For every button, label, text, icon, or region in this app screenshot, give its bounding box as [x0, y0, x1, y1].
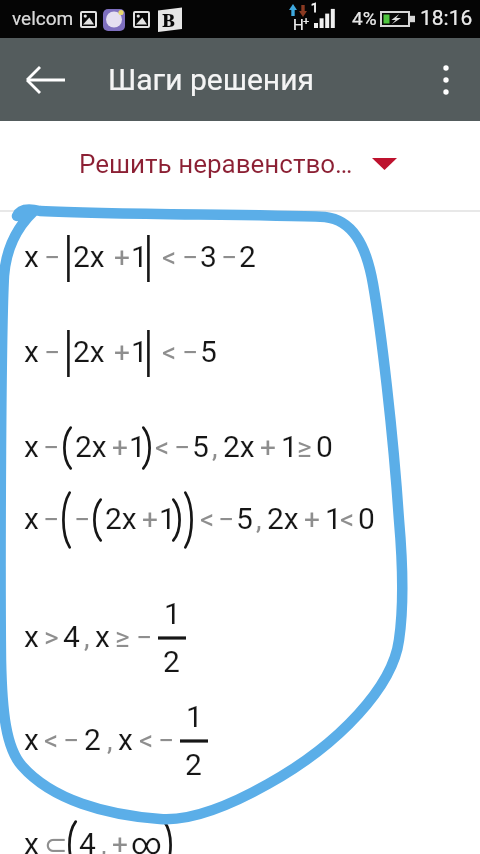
- button[interactable]: Решить неравенство…: [70, 140, 410, 192]
- staticText: x: [118, 722, 133, 757]
- staticText: +: [112, 828, 128, 854]
- staticText: Шаги решения: [108, 62, 314, 97]
- staticText: 1: [129, 429, 146, 464]
- staticText: ⊂: [44, 828, 68, 854]
- staticText: <: [44, 724, 59, 757]
- staticText: velcom: [12, 7, 74, 29]
- staticText: x: [95, 619, 110, 654]
- staticText: 2x: [73, 239, 105, 274]
- staticText: ∞: [131, 826, 162, 854]
- staticText: −: [43, 503, 60, 536]
- staticText: 5: [192, 429, 209, 464]
- staticText: ,: [101, 828, 107, 854]
- staticText: 2x: [267, 501, 299, 536]
- staticText: 2x: [105, 501, 137, 536]
- staticText: ≥: [297, 431, 312, 464]
- staticText: x: [24, 826, 39, 854]
- staticText: 1: [186, 699, 203, 734]
- staticText: 2: [163, 644, 180, 679]
- staticText: ,: [107, 724, 113, 757]
- staticText: +: [303, 15, 310, 28]
- staticText: −: [74, 503, 91, 536]
- staticText: x: [24, 239, 39, 274]
- staticText: x: [24, 334, 39, 369]
- staticText: +: [114, 241, 130, 274]
- staticText: <: [155, 431, 170, 464]
- staticText: 2x: [223, 429, 255, 464]
- staticText: <: [162, 336, 177, 369]
- staticText: −: [44, 336, 61, 369]
- staticText: −: [44, 241, 61, 274]
- staticText: 1: [131, 334, 148, 369]
- staticText: 4%: [352, 7, 377, 29]
- staticText: −: [136, 621, 153, 654]
- staticText: 1: [325, 501, 342, 536]
- staticText: −: [63, 724, 80, 757]
- staticText: 1: [159, 501, 176, 536]
- staticText: <: [139, 724, 154, 757]
- staticText: 0: [358, 501, 375, 536]
- staticText: ,: [256, 503, 262, 536]
- staticText: 1: [281, 429, 298, 464]
- staticText: x: [24, 619, 39, 654]
- staticText: −: [158, 724, 175, 757]
- staticText: 2: [84, 722, 101, 757]
- staticText: −: [43, 431, 60, 464]
- button[interactable]: Back: [22, 55, 72, 105]
- staticText: +: [114, 336, 130, 369]
- staticText: x: [24, 722, 39, 757]
- staticText: 5: [236, 501, 253, 536]
- staticText: x: [24, 429, 39, 464]
- staticText: Решить неравенство…: [79, 149, 353, 179]
- staticText: 2: [239, 239, 256, 274]
- staticText: x: [24, 501, 39, 536]
- staticText: +: [142, 503, 158, 536]
- staticText: >: [44, 621, 59, 654]
- staticText: 2x: [75, 429, 107, 464]
- staticText: 1: [164, 596, 181, 631]
- staticText: 5: [200, 334, 217, 369]
- staticText: 2x: [73, 334, 105, 369]
- staticText: 18:16: [420, 6, 473, 31]
- staticText: +: [112, 431, 128, 464]
- staticText: ,: [84, 621, 90, 654]
- staticText: 0: [316, 429, 333, 464]
- staticText: <: [200, 503, 215, 536]
- staticText: 3: [200, 239, 217, 274]
- staticText: B: [162, 8, 175, 33]
- staticText: ,: [212, 431, 218, 464]
- staticText: −: [182, 336, 199, 369]
- staticText: 4: [63, 619, 80, 654]
- staticText: −: [218, 503, 235, 536]
- staticText: 2: [185, 747, 202, 782]
- staticText: +: [304, 503, 320, 536]
- staticText: 1: [311, 0, 319, 15]
- staticText: <: [162, 241, 177, 274]
- staticText: −: [221, 241, 238, 274]
- button[interactable]: More options: [424, 55, 474, 105]
- staticText: 1: [131, 239, 148, 274]
- staticText: <: [340, 503, 355, 536]
- staticText: −: [182, 241, 199, 274]
- staticText: ≥: [115, 621, 130, 654]
- staticText: −: [174, 431, 191, 464]
- staticText: 4: [79, 826, 96, 854]
- staticText: H: [293, 16, 304, 34]
- staticText: +: [260, 431, 276, 464]
